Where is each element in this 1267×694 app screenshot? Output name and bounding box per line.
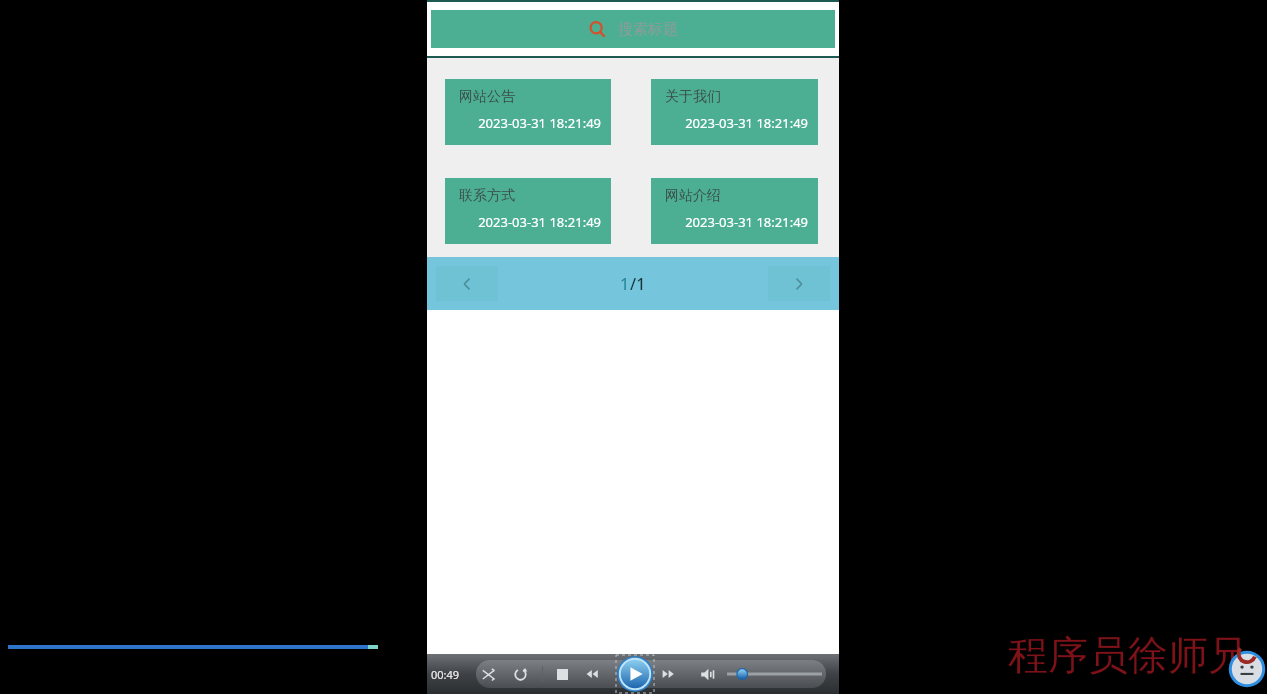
button[interactable]: Volume xyxy=(700,667,715,682)
button[interactable]: Next page xyxy=(768,266,830,301)
button[interactable]: Volume slider xyxy=(727,667,822,681)
button[interactable]: Fast forward xyxy=(660,664,680,684)
button[interactable]: Search xyxy=(431,10,835,48)
other: Search xyxy=(589,21,606,38)
button[interactable]: Play xyxy=(616,655,654,693)
staticText: 00:49 xyxy=(431,667,460,682)
staticText: 关于我们 xyxy=(665,88,721,106)
button[interactable]: 网站公告 xyxy=(445,79,611,145)
button[interactable]: Shuffle xyxy=(481,667,496,682)
staticText: 2023-03-31 18:21:49 xyxy=(665,114,808,132)
staticText: 2023-03-31 18:21:49 xyxy=(665,213,808,231)
staticText: 网站公告 xyxy=(459,88,515,106)
staticText: 2023-03-31 18:21:49 xyxy=(459,213,601,231)
staticText: 搜索标题 xyxy=(618,20,678,39)
staticText: 程序员徐师兄 xyxy=(1008,630,1248,680)
button[interactable]: 关于我们 xyxy=(651,79,818,145)
button[interactable]: Repeat xyxy=(513,667,528,682)
staticText: 2023-03-31 18:21:49 xyxy=(459,114,601,132)
button[interactable]: 联系方式 xyxy=(445,178,611,244)
other: Logo xyxy=(1228,650,1266,688)
button[interactable]: Rewind xyxy=(584,664,604,684)
staticText: 网站介绍 xyxy=(665,187,721,205)
staticText: 1 xyxy=(620,273,630,295)
staticText: 联系方式 xyxy=(459,187,515,205)
button[interactable]: 网站介绍 xyxy=(651,178,818,244)
staticText: /1 xyxy=(630,273,646,295)
button[interactable]: Previous page xyxy=(436,266,498,301)
